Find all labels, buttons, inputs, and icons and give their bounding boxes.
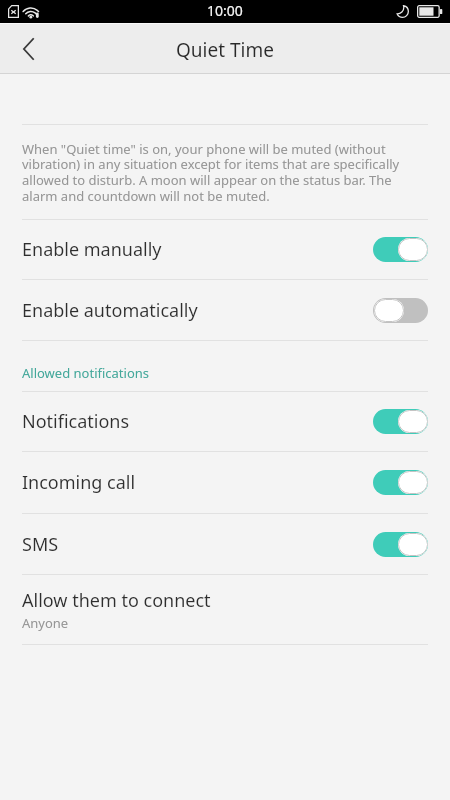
button[interactable]: Notifications [0, 392, 450, 451]
staticText: SMS [22, 532, 373, 557]
staticText: Allowed notifications [22, 364, 150, 382]
staticText: Quiet Time [176, 37, 274, 63]
button[interactable]: Enable manually [0, 220, 450, 279]
button[interactable]: Incoming call [0, 452, 450, 513]
staticText: Anyone [22, 614, 69, 632]
staticText: Incoming call [22, 470, 373, 495]
staticText: When "Quiet time" is on, your phone will… [22, 140, 428, 205]
button[interactable]: Enable automatically [0, 280, 450, 340]
button[interactable]: Back [0, 24, 48, 73]
staticText: Allow them to connect [22, 588, 211, 613]
button[interactable]: Allow them to connect [0, 575, 450, 644]
staticText: Enable automatically [22, 298, 373, 323]
button[interactable]: SMS [0, 514, 450, 574]
staticText: Enable manually [22, 237, 373, 262]
staticText: Notifications [22, 409, 373, 434]
staticText: 10:00 [207, 1, 243, 20]
